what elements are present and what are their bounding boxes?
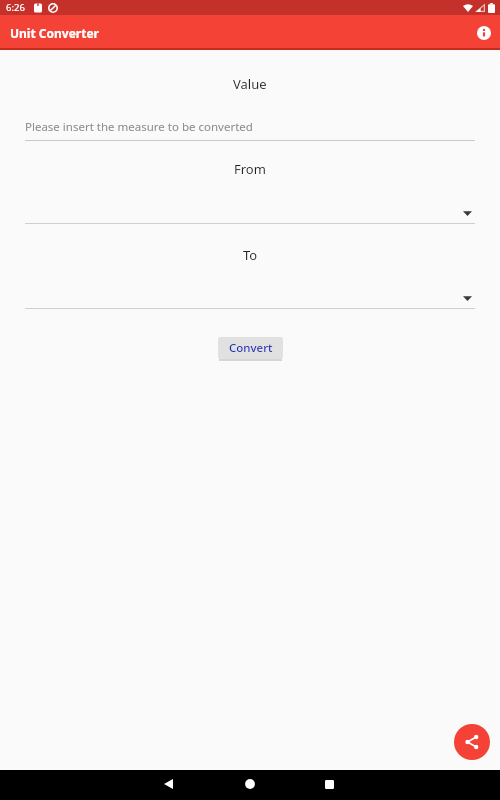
button[interactable]: Convert <box>218 337 283 359</box>
button[interactable] <box>477 26 491 40</box>
button[interactable] <box>0 206 500 220</box>
staticText: From <box>234 160 266 178</box>
button[interactable] <box>238 772 262 796</box>
button[interactable] <box>454 724 490 760</box>
staticText: Convert <box>229 340 273 356</box>
staticText: To <box>243 246 258 264</box>
button[interactable] <box>156 772 180 796</box>
staticText: Please insert the measure to be converte… <box>25 119 253 135</box>
staticText: 6:26 <box>6 1 25 14</box>
button[interactable] <box>0 291 500 305</box>
button[interactable]: Please insert the measure to be converte… <box>0 117 500 137</box>
button[interactable] <box>317 772 341 796</box>
staticText: Value <box>233 75 267 93</box>
staticText: Unit Converter <box>10 25 99 41</box>
